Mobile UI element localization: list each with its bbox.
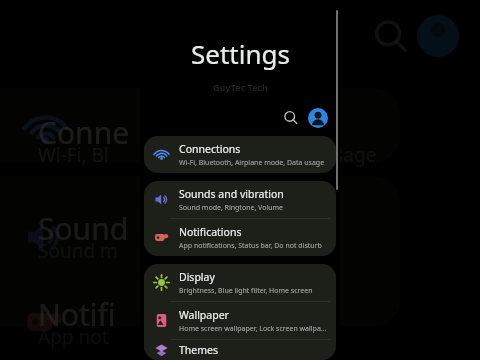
button[interactable]: Themes xyxy=(144,340,336,360)
staticText: Settings xyxy=(191,36,290,71)
staticText: Sound mode, Ringtone, Volume xyxy=(179,203,284,213)
staticText: Wi-Fi, Bluetooth, Airplane mode, Data us… xyxy=(179,158,325,168)
button[interactable]: Sounds and vibration xyxy=(144,181,336,219)
staticText: Brightness, Blue light filter, Home scre… xyxy=(179,286,313,296)
staticText: Sounds and vibration xyxy=(179,187,284,201)
staticText: Connections xyxy=(179,142,241,156)
staticText: App notifications, Status bar, Do not di… xyxy=(179,241,322,251)
staticText: Home screen wallpaper, Lock screen wallp… xyxy=(179,324,328,334)
staticText: GuyTec Tech xyxy=(213,81,268,93)
staticText: Themes xyxy=(179,343,219,357)
staticText: App not xyxy=(38,324,109,350)
staticText: Sound xyxy=(38,208,129,249)
button[interactable]: Notifications xyxy=(144,219,336,256)
staticText: Notifications xyxy=(179,225,242,239)
staticText: Display xyxy=(179,270,215,284)
staticText: ta usage xyxy=(300,142,377,168)
staticText: Notifi xyxy=(38,294,116,335)
button[interactable]: Display xyxy=(144,264,336,302)
staticText: Wallpaper xyxy=(179,308,229,322)
staticText: Wi-Fi, Bl xyxy=(38,142,109,168)
button[interactable]: Wallpaper xyxy=(144,302,336,340)
button[interactable]: Search xyxy=(280,107,302,129)
staticText: Sound m xyxy=(38,238,118,264)
button[interactable]: Connections xyxy=(144,136,336,173)
button[interactable]: Account xyxy=(308,108,328,128)
staticText: Conne xyxy=(38,112,130,153)
